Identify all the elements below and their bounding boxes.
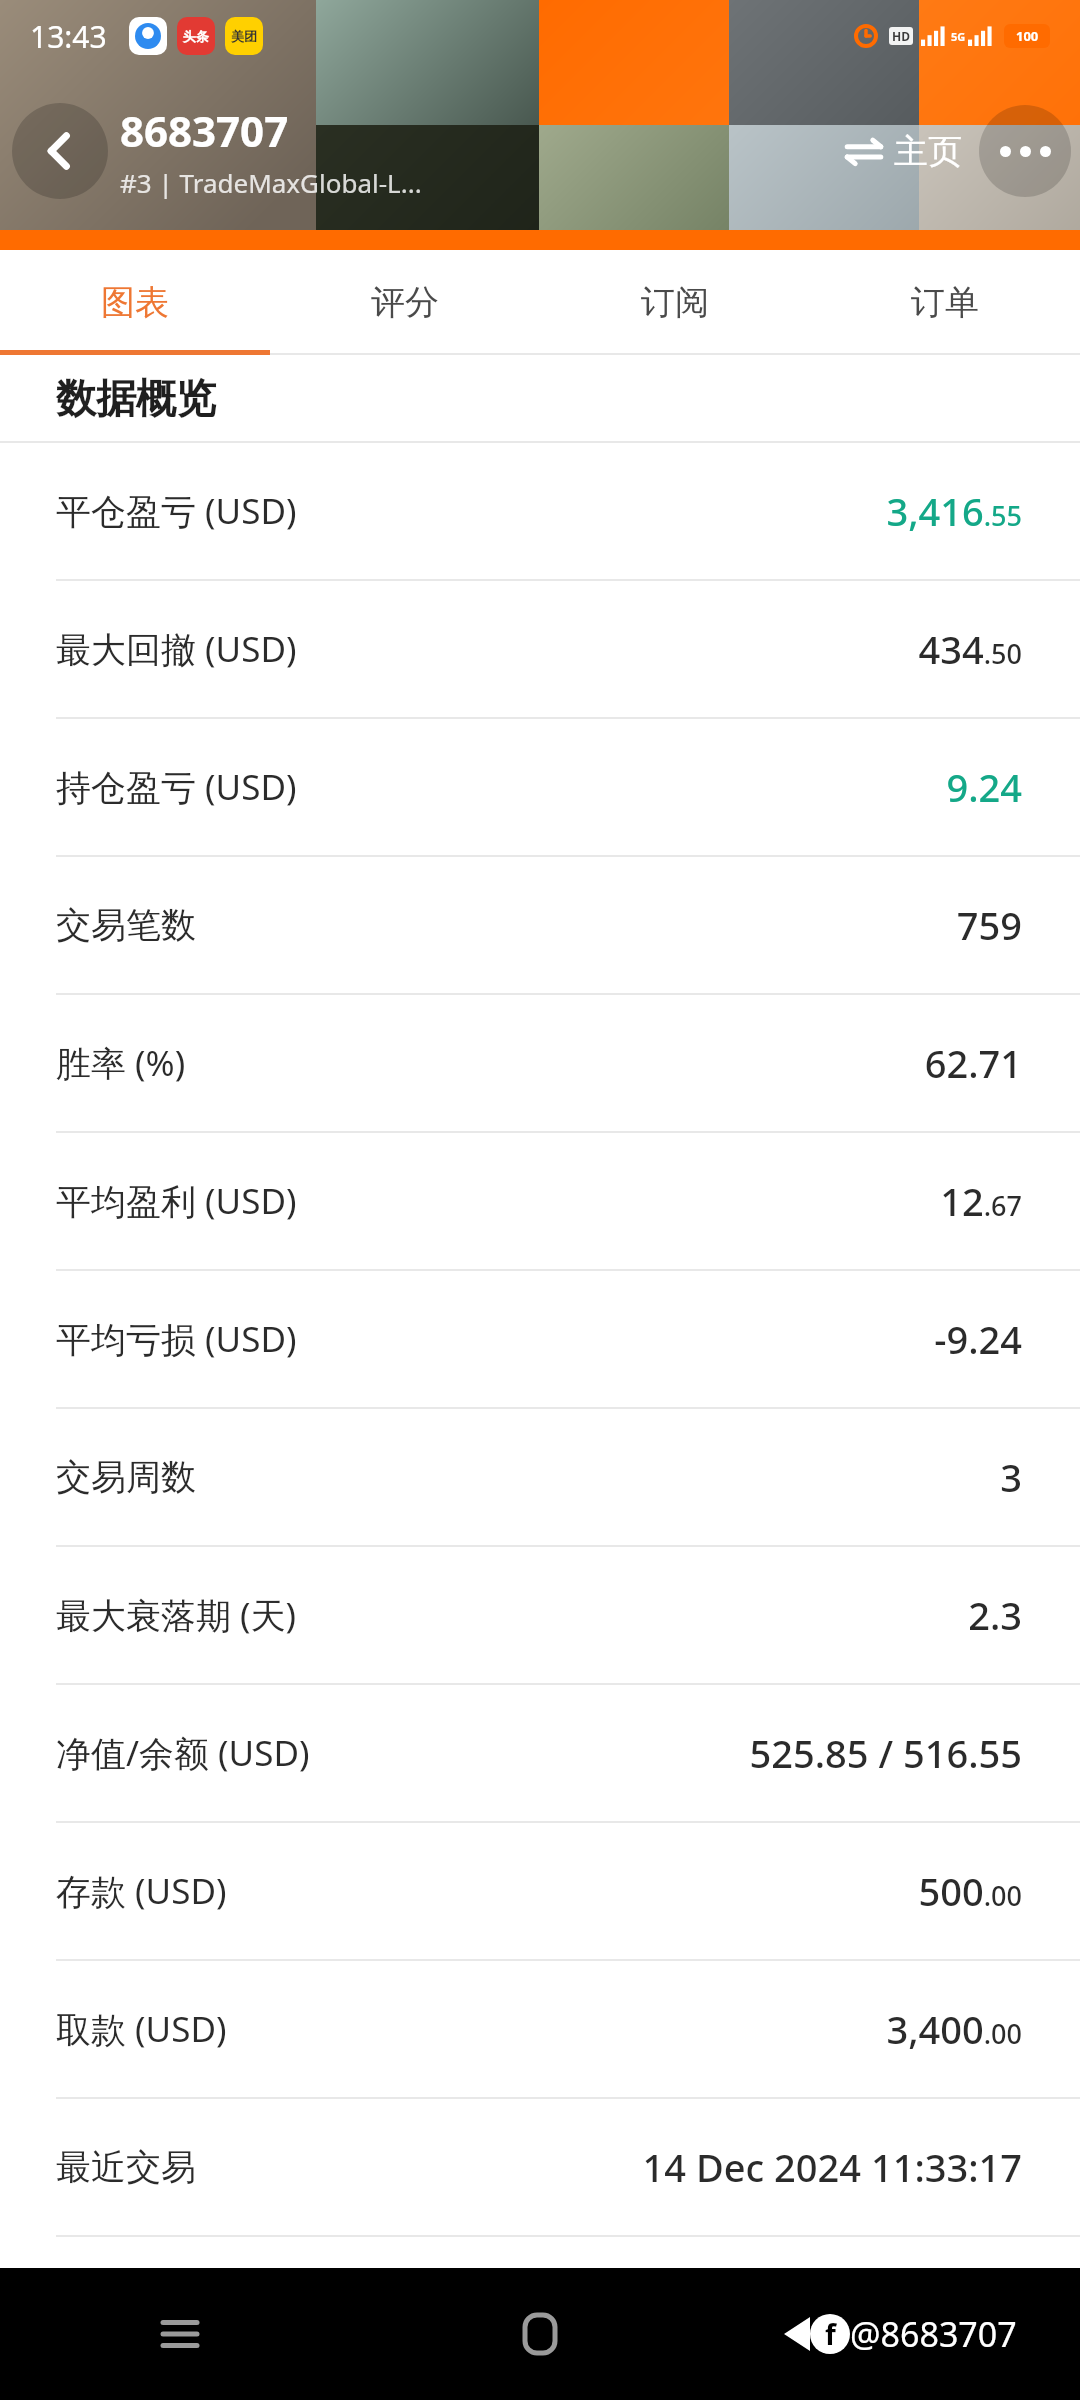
button[interactable]: 订阅 [540,250,810,355]
staticText: 13:43 [30,16,107,57]
staticText: f [825,2315,836,2353]
staticText: 交易笔数 [56,903,196,947]
staticText: 最大回撤 (USD) [56,625,297,673]
staticText: 平均盈利 (USD) [56,1177,297,1225]
staticText: 订阅 [641,281,709,324]
staticText: 订单 [911,281,979,324]
staticText: @8683707 [850,2311,1017,2357]
staticText: #3 | TradeMaxGlobal-L... [120,165,422,200]
button[interactable]: 取款 (USD) [0,1961,1080,2097]
staticText: 平仓盈亏 (USD) [56,487,297,535]
button[interactable]: Back [0,91,120,211]
staticText: 平均亏损 (USD) [56,1315,297,1363]
button[interactable]: 持仓盈亏 (USD) [0,719,1080,855]
button[interactable]: 主页 [844,91,962,211]
staticText: -9.24 [934,1313,1022,1365]
button[interactable]: 评分 [270,250,540,355]
button[interactable]: 平均盈利 (USD) [0,1133,1080,1269]
button[interactable]: 最大衰落期 (天) [0,1547,1080,1683]
staticText: 5G [951,29,966,44]
staticText: 434.50 [918,623,1022,675]
staticText: HD [892,28,910,44]
staticText: 数据概览 [56,373,216,423]
staticText: 持仓盈亏 (USD) [56,763,297,811]
button[interactable]: 交易周数 [0,1409,1080,1545]
staticText: 取款 (USD) [56,2005,227,2053]
button[interactable]: 最近交易 [0,2099,1080,2235]
staticText: 最大衰落期 (天) [56,1591,297,1639]
button[interactable]: 订单 [810,250,1080,355]
staticText: 100 [1016,27,1039,45]
staticText: 14 Dec 2024 11:33:17 [642,2141,1022,2193]
staticText: 3,416.55 [886,485,1022,537]
staticText: 8683707 [120,102,289,159]
staticText: 500.00 [918,1865,1022,1917]
button[interactable]: More options [970,91,1080,211]
button[interactable]: Home [360,2268,720,2400]
staticText: 62.71 [924,1037,1022,1089]
staticText: 交易周数 [56,1455,196,1499]
staticText: 头条 [183,28,209,44]
button[interactable]: 图表 [0,250,270,355]
button[interactable]: 平仓盈亏 (USD) [0,443,1080,579]
button[interactable]: 净值/余额 (USD) [0,1685,1080,1821]
button[interactable]: Back [720,2268,1080,2400]
button[interactable]: Recent apps [0,2268,360,2400]
button[interactable]: 交易笔数 [0,857,1080,993]
staticText: 3 [1000,1451,1022,1503]
staticText: 胜率 (%) [56,1039,186,1087]
button[interactable]: 存款 (USD) [0,1823,1080,1959]
staticText: 美团 [231,28,257,44]
button[interactable]: 最大回撤 (USD) [0,581,1080,717]
button[interactable]: 平均亏损 (USD) [0,1271,1080,1407]
staticText: 759 [956,899,1022,951]
staticText: 2.3 [968,1589,1022,1641]
staticText: 9.24 [946,761,1022,813]
staticText: 主页 [894,130,962,173]
staticText: 图表 [101,281,169,324]
staticText: 12.67 [940,1175,1022,1227]
button[interactable]: 胜率 (%) [0,995,1080,1131]
staticText: 525.85 / 516.55 [749,1727,1022,1779]
staticText: 评分 [371,281,439,324]
staticText: 最近交易 [56,2145,196,2189]
staticText: 存款 (USD) [56,1867,227,1915]
staticText: 净值/余额 (USD) [56,1729,310,1777]
staticText: 3,400.00 [886,2003,1022,2055]
